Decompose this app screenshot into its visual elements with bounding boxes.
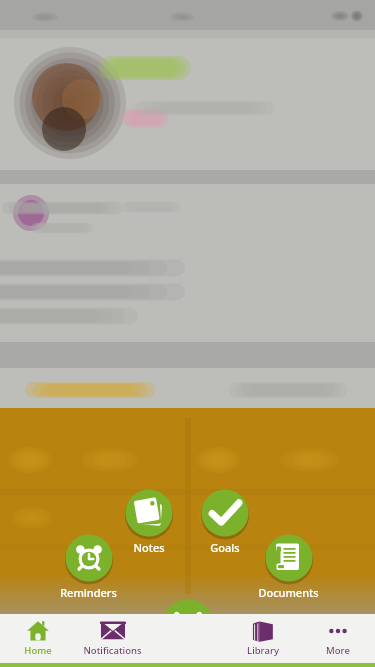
other: Documents bbox=[265, 534, 313, 582]
staticText: Reminders bbox=[60, 585, 117, 600]
other: Notes bbox=[125, 489, 173, 537]
button[interactable]: Notifications bbox=[75, 614, 150, 663]
staticText: Goals bbox=[210, 540, 240, 555]
button[interactable]: Documents bbox=[248, 534, 328, 600]
staticText: Library bbox=[247, 644, 279, 657]
button[interactable]: Notes bbox=[109, 489, 189, 555]
button[interactable]: Goals bbox=[185, 489, 265, 555]
other: Goals bbox=[201, 489, 249, 537]
staticText: Home bbox=[24, 644, 52, 657]
staticText: Notes bbox=[133, 540, 165, 555]
button[interactable]: Home bbox=[0, 614, 75, 663]
button[interactable]: More bbox=[300, 614, 375, 663]
button[interactable]: Reminders bbox=[48, 534, 128, 600]
button[interactable]: Close menu bbox=[161, 599, 215, 653]
staticText: Notifications bbox=[83, 644, 142, 657]
button[interactable]: Library bbox=[225, 614, 300, 663]
other: Reminders bbox=[65, 534, 113, 582]
staticText: More bbox=[326, 644, 350, 657]
staticText: Documents bbox=[258, 585, 319, 600]
